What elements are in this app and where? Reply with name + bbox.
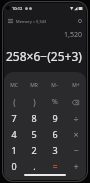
other: Backspace: [72, 100, 79, 105]
button[interactable]: .: [24, 158, 44, 174]
staticText: 9: [52, 112, 58, 124]
staticText: .: [33, 160, 36, 172]
staticText: M−: [51, 82, 59, 89]
staticText: 1,520: [64, 30, 82, 40]
staticText: 2: [31, 144, 37, 156]
button[interactable]: 6: [44, 126, 65, 142]
staticText: −: [73, 144, 79, 156]
staticText: ): [33, 97, 36, 108]
staticText: (: [13, 97, 16, 108]
staticText: Memory = 0,543: [16, 19, 47, 24]
button[interactable]: (: [4, 94, 24, 110]
staticText: 258×6−(25+3): [6, 48, 82, 64]
button[interactable]: 0: [4, 158, 24, 174]
button[interactable]: 3: [44, 142, 65, 158]
staticText: 6: [52, 128, 58, 140]
button[interactable]: MR: [24, 77, 44, 94]
staticText: ÷: [73, 112, 79, 124]
button[interactable]: M−: [44, 77, 65, 94]
staticText: M+: [72, 82, 80, 89]
button[interactable]: +: [65, 158, 86, 174]
button[interactable]: MC: [4, 77, 24, 94]
staticText: MC: [10, 82, 18, 89]
button[interactable]: Backspace: [65, 94, 86, 110]
staticText: MR: [30, 82, 38, 89]
staticText: ×: [73, 128, 79, 140]
button[interactable]: 2: [24, 142, 44, 158]
staticText: 10:12: [12, 6, 23, 11]
button[interactable]: =: [44, 158, 65, 174]
staticText: 8: [31, 112, 37, 124]
staticText: 3: [52, 144, 58, 156]
button[interactable]: History: [5, 16, 15, 26]
button[interactable]: ×: [65, 126, 86, 142]
button[interactable]: 7: [4, 110, 24, 126]
staticText: 0: [11, 160, 17, 172]
staticText: +: [73, 160, 79, 172]
button[interactable]: ): [24, 94, 44, 110]
button[interactable]: Settings: [75, 16, 85, 26]
button[interactable]: 9: [44, 110, 65, 126]
staticText: 4: [11, 128, 17, 140]
button[interactable]: 1: [4, 142, 24, 158]
staticText: 1: [11, 144, 17, 156]
staticText: 7: [11, 112, 17, 124]
button[interactable]: −: [65, 142, 86, 158]
button[interactable]: %: [44, 94, 65, 110]
staticText: 5: [31, 128, 37, 140]
button[interactable]: 4: [4, 126, 24, 142]
button[interactable]: M+: [65, 77, 86, 94]
staticText: %: [52, 97, 58, 107]
button[interactable]: 5: [24, 126, 44, 142]
button[interactable]: ÷: [65, 110, 86, 126]
staticText: =: [52, 160, 58, 172]
button[interactable]: 8: [24, 110, 44, 126]
